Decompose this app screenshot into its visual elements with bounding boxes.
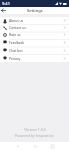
button[interactable]: Back [0, 7, 7, 14]
staticText: Chat bot [9, 48, 23, 53]
button[interactable]: Recents [48, 142, 56, 150]
staticText: Settings [27, 8, 43, 13]
button[interactable]: About us [0, 17, 69, 24]
button[interactable]: Home [31, 142, 39, 150]
button[interactable]: Contact us [0, 24, 69, 31]
button[interactable]: Chat bot [0, 46, 69, 54]
staticText: Powered by Inspiration [15, 133, 54, 138]
staticText: About us [9, 18, 24, 23]
staticText: Rate us [9, 32, 21, 37]
staticText: Version 1.0.0 [24, 127, 46, 132]
button[interactable]: Back [13, 142, 21, 150]
staticText: Contact us [9, 25, 26, 30]
staticText: Privacy [9, 56, 21, 61]
staticText: 9:41 [2, 1, 10, 6]
button[interactable]: Rate us [0, 31, 69, 38]
button[interactable]: Feedback [0, 38, 69, 46]
button[interactable]: Privacy [0, 54, 69, 62]
staticText: Feedback [9, 40, 25, 45]
